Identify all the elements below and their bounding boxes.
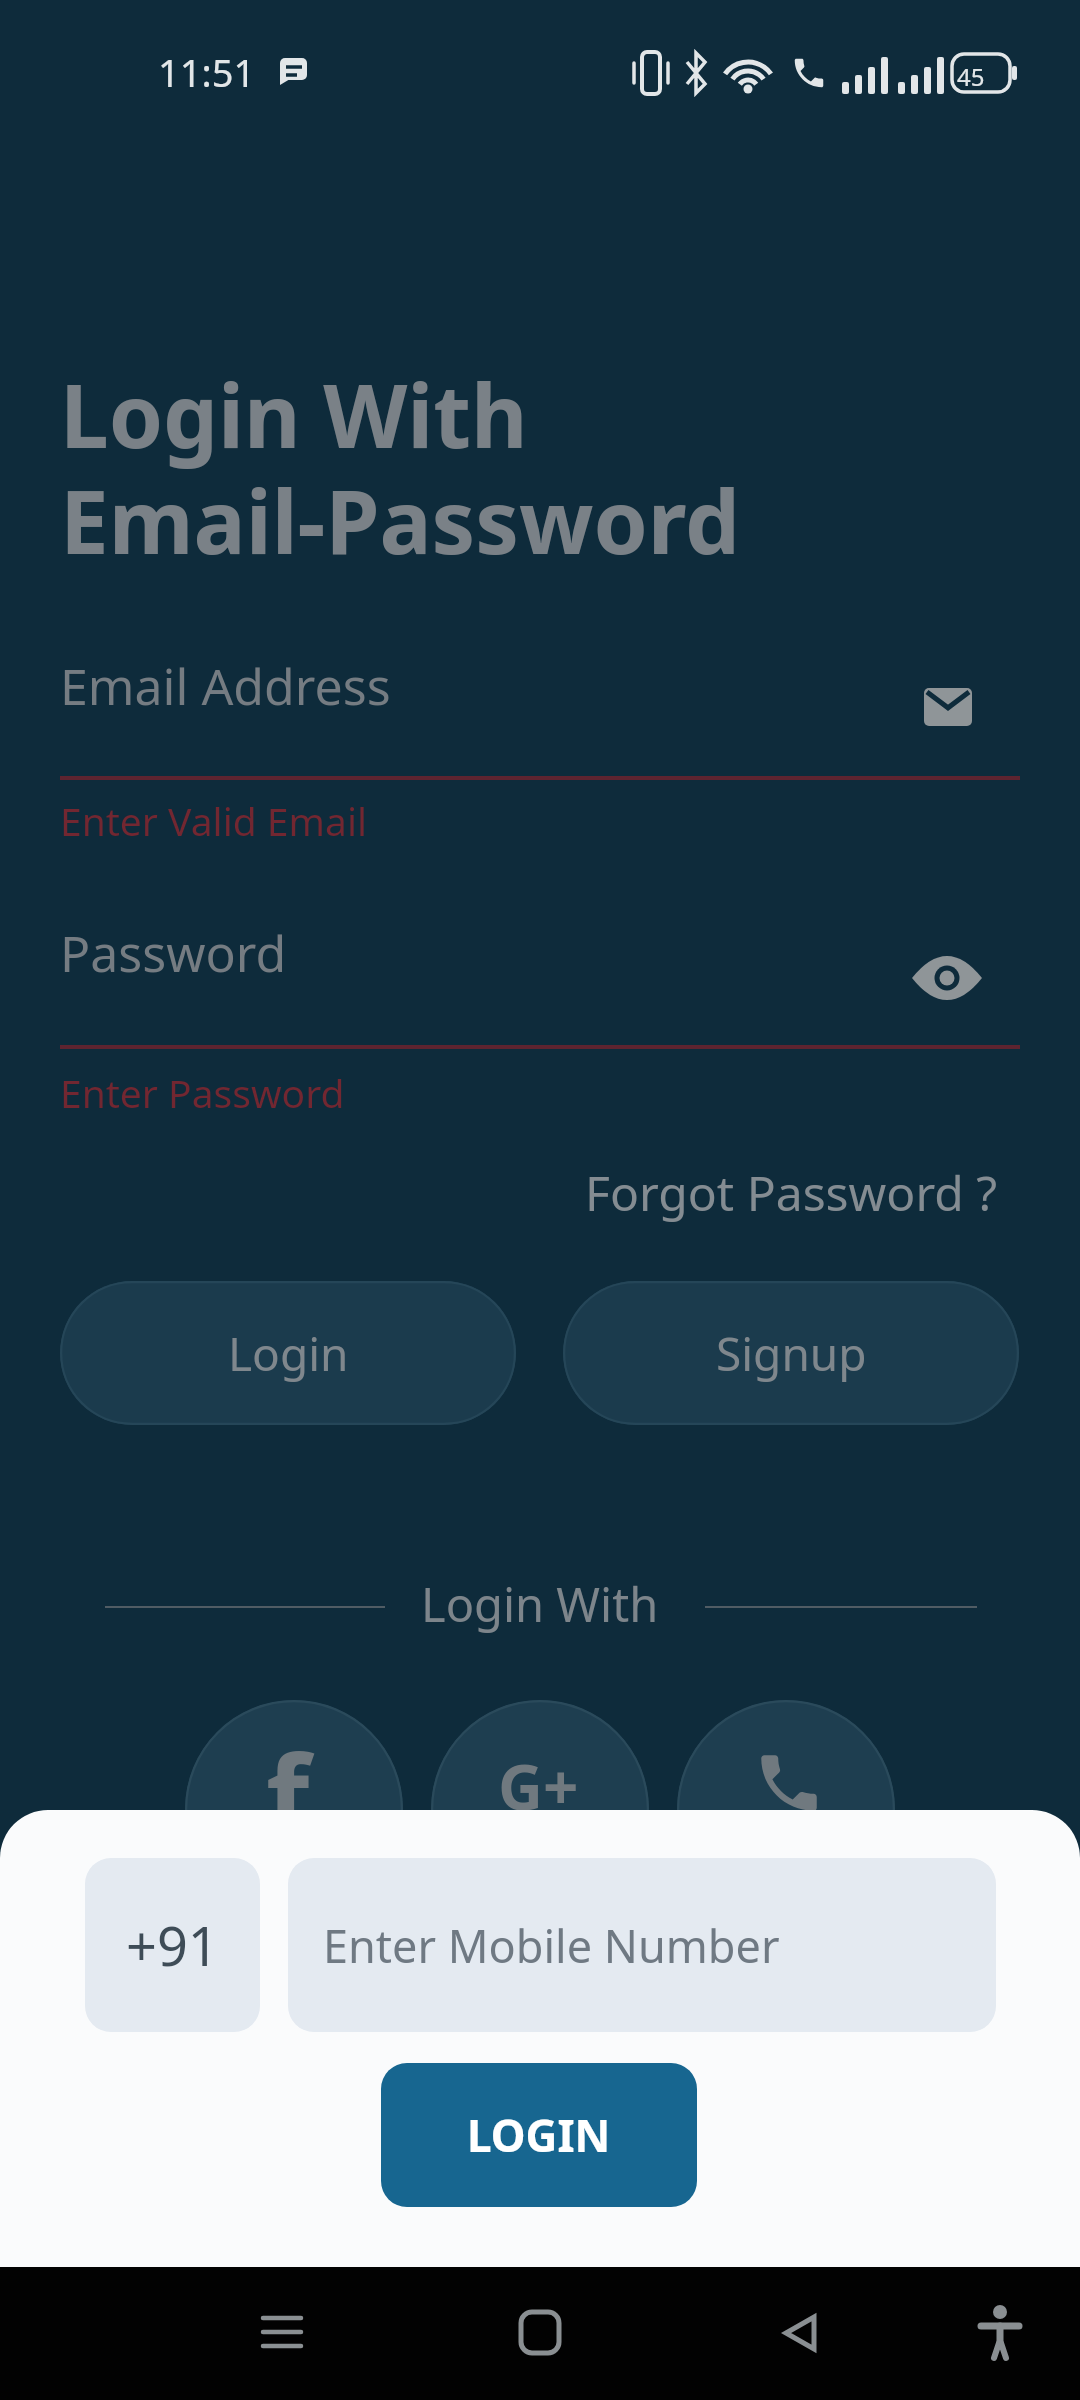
staticText: Password: [60, 919, 287, 987]
button[interactable]: Enter Mobile Number: [288, 1858, 996, 2032]
button[interactable]: Login: [60, 1281, 516, 1425]
staticText: Login: [228, 1322, 349, 1385]
staticText: Email Address: [60, 652, 391, 720]
staticText: 45: [957, 60, 985, 93]
staticText: Signup: [716, 1322, 867, 1385]
staticText: f: [266, 1716, 310, 1869]
button[interactable]: [185, 1700, 403, 1918]
staticText: Login With: [421, 1572, 659, 1636]
staticText: +91: [126, 1908, 219, 1982]
button[interactable]: Forgot Password ?: [585, 1160, 998, 1225]
button[interactable]: Signup: [563, 1281, 1019, 1425]
button[interactable]: [519, 2310, 561, 2355]
staticText: Enter Valid Email: [60, 794, 368, 847]
button[interactable]: [912, 957, 982, 999]
button[interactable]: [978, 2305, 1022, 2361]
staticText: Enter Mobile Number: [323, 1915, 780, 1976]
staticText: LOGIN: [467, 2105, 611, 2165]
staticText: Login With Email-Password: [60, 355, 740, 580]
staticText: Enter Password: [60, 1066, 345, 1119]
button[interactable]: [431, 1700, 649, 1918]
button[interactable]: [783, 2313, 817, 2353]
staticText: G+: [498, 1744, 579, 1828]
button[interactable]: LOGIN: [381, 2063, 697, 2207]
button[interactable]: [263, 2314, 301, 2352]
button[interactable]: +91: [85, 1858, 260, 2032]
staticText: 11:51: [158, 46, 256, 98]
button[interactable]: [677, 1700, 895, 1918]
